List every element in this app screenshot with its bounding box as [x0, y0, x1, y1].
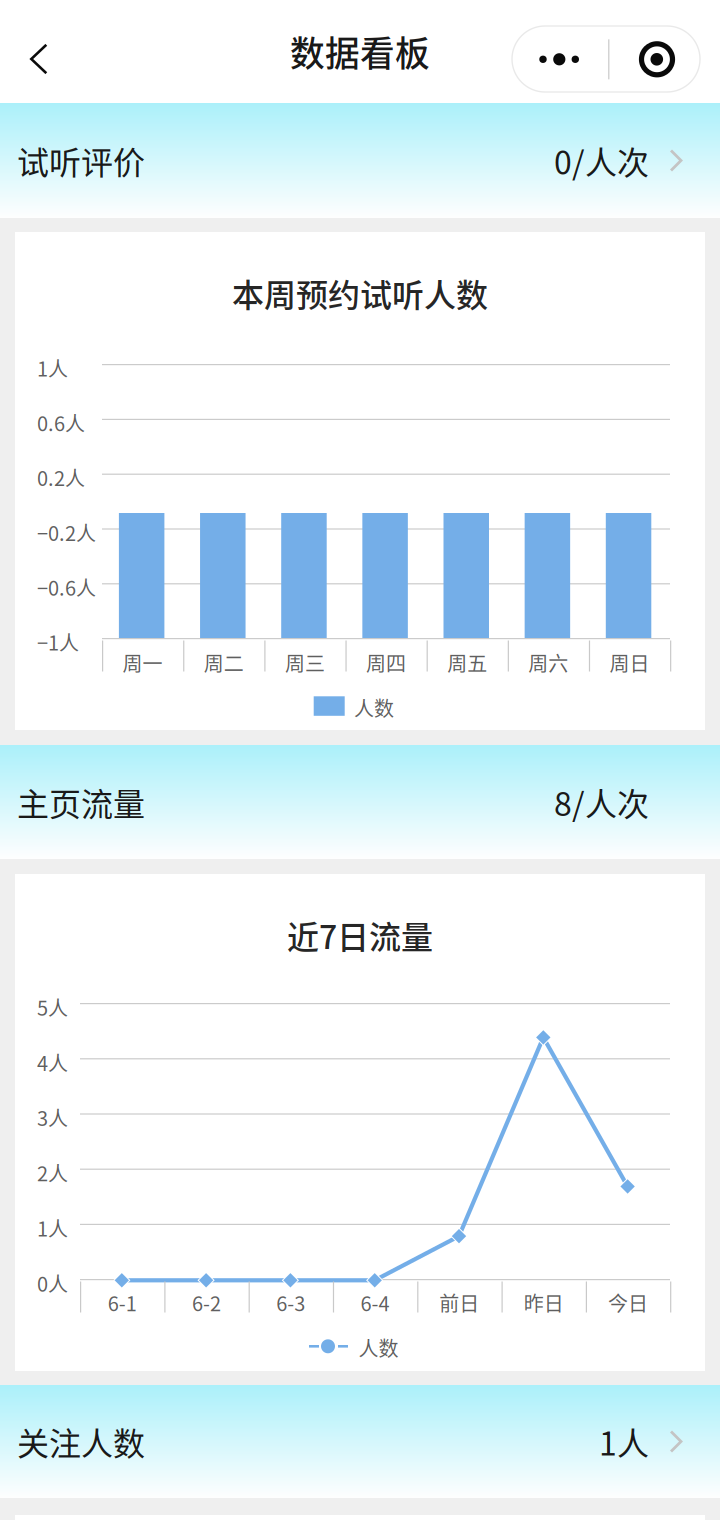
staticText: 6-3 — [276, 1288, 305, 1317]
button[interactable]: 试听评价 — [0, 103, 720, 218]
staticText: 5人 — [37, 992, 68, 1021]
staticText: 人数 — [358, 1333, 398, 1362]
staticText: 周一 — [123, 648, 163, 677]
staticText: 6-4 — [360, 1288, 389, 1317]
staticText: 试听评价 — [17, 137, 145, 184]
staticText: 今日 — [608, 1288, 648, 1317]
staticText: 昨日 — [524, 1288, 564, 1317]
staticText: −0.2人 — [37, 518, 96, 547]
staticText: 0.2人 — [37, 463, 85, 492]
staticText: 本周预约试听人数 — [232, 270, 488, 316]
staticText: 前日 — [439, 1288, 479, 1317]
button[interactable]: 更多 — [512, 26, 700, 92]
staticText: 周日 — [609, 648, 649, 677]
staticText: 4人 — [37, 1048, 68, 1077]
staticText: 人数 — [354, 693, 394, 722]
staticText: 关注人数 — [17, 1418, 145, 1465]
staticText: 1人 — [37, 1213, 68, 1242]
staticText: 0/人次 — [554, 137, 649, 184]
staticText: 1人 — [37, 353, 68, 382]
staticText: 周三 — [285, 648, 325, 677]
staticText: 0人 — [37, 1268, 68, 1297]
staticText: 近7日流量 — [287, 912, 433, 958]
staticText: 2人 — [37, 1158, 68, 1187]
staticText: 3人 — [37, 1103, 68, 1132]
staticText: 数据看板 — [290, 26, 430, 77]
staticText: 8/人次 — [554, 779, 649, 825]
staticText: 1人 — [599, 1418, 649, 1465]
staticText: −1人 — [37, 627, 79, 656]
staticText: −0.6人 — [37, 572, 96, 601]
button[interactable]: 主页流量 — [0, 745, 720, 859]
staticText: 6-2 — [192, 1288, 221, 1317]
staticText: 周四 — [366, 648, 406, 677]
button[interactable]: 返回 — [2, 18, 76, 100]
staticText: 主页流量 — [17, 779, 145, 825]
staticText: 6-1 — [108, 1288, 137, 1317]
staticText: 周五 — [447, 648, 487, 677]
button[interactable]: 关注人数 — [0, 1385, 720, 1498]
staticText: 周二 — [204, 648, 244, 677]
staticText: 周六 — [528, 648, 568, 677]
staticText: 0.6人 — [37, 408, 85, 437]
